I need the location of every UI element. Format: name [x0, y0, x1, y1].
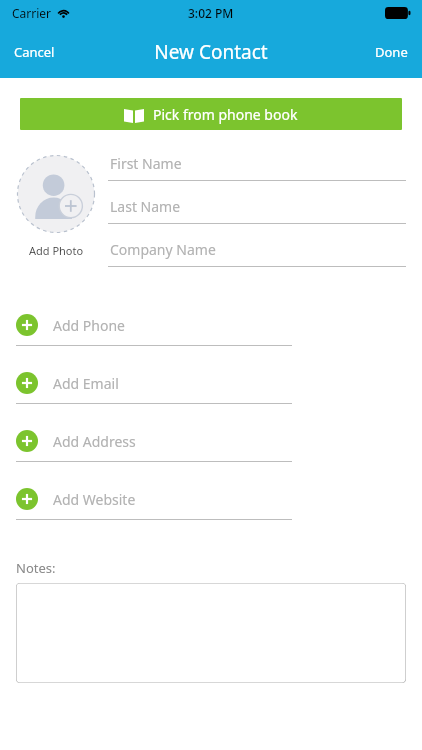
- staticText: Notes:: [16, 559, 56, 577]
- button[interactable]: Add Photo: [14, 154, 98, 258]
- button[interactable]: [16, 583, 406, 683]
- staticText: Add Address: [53, 432, 136, 451]
- staticText: Cancel: [14, 43, 55, 61]
- staticText: Add Email: [53, 374, 119, 393]
- button[interactable]: Add Website: [0, 479, 422, 537]
- staticText: Done: [375, 43, 408, 61]
- button[interactable]: Add Phone: [0, 305, 422, 363]
- staticText: 3:02 PM: [188, 5, 234, 21]
- button[interactable]: Cancel: [0, 33, 69, 71]
- staticText: Company Name: [110, 240, 216, 259]
- staticText: New Contact: [154, 39, 268, 65]
- button[interactable]: Company Name: [108, 232, 406, 275]
- button[interactable]: Add Address: [0, 421, 422, 479]
- staticText: Last Name: [110, 197, 181, 216]
- button[interactable]: Add Email: [0, 363, 422, 421]
- staticText: Carrier: [12, 5, 52, 21]
- button[interactable]: Pick from phone book: [20, 98, 402, 130]
- staticText: Add Photo: [29, 243, 84, 258]
- button[interactable]: Done: [361, 33, 422, 71]
- button[interactable]: Last Name: [108, 189, 406, 232]
- staticText: Add Phone: [53, 316, 125, 335]
- button[interactable]: First Name: [108, 146, 406, 189]
- staticText: Add Website: [53, 490, 136, 509]
- staticText: First Name: [110, 154, 182, 173]
- staticText: Pick from phone book: [153, 105, 298, 124]
